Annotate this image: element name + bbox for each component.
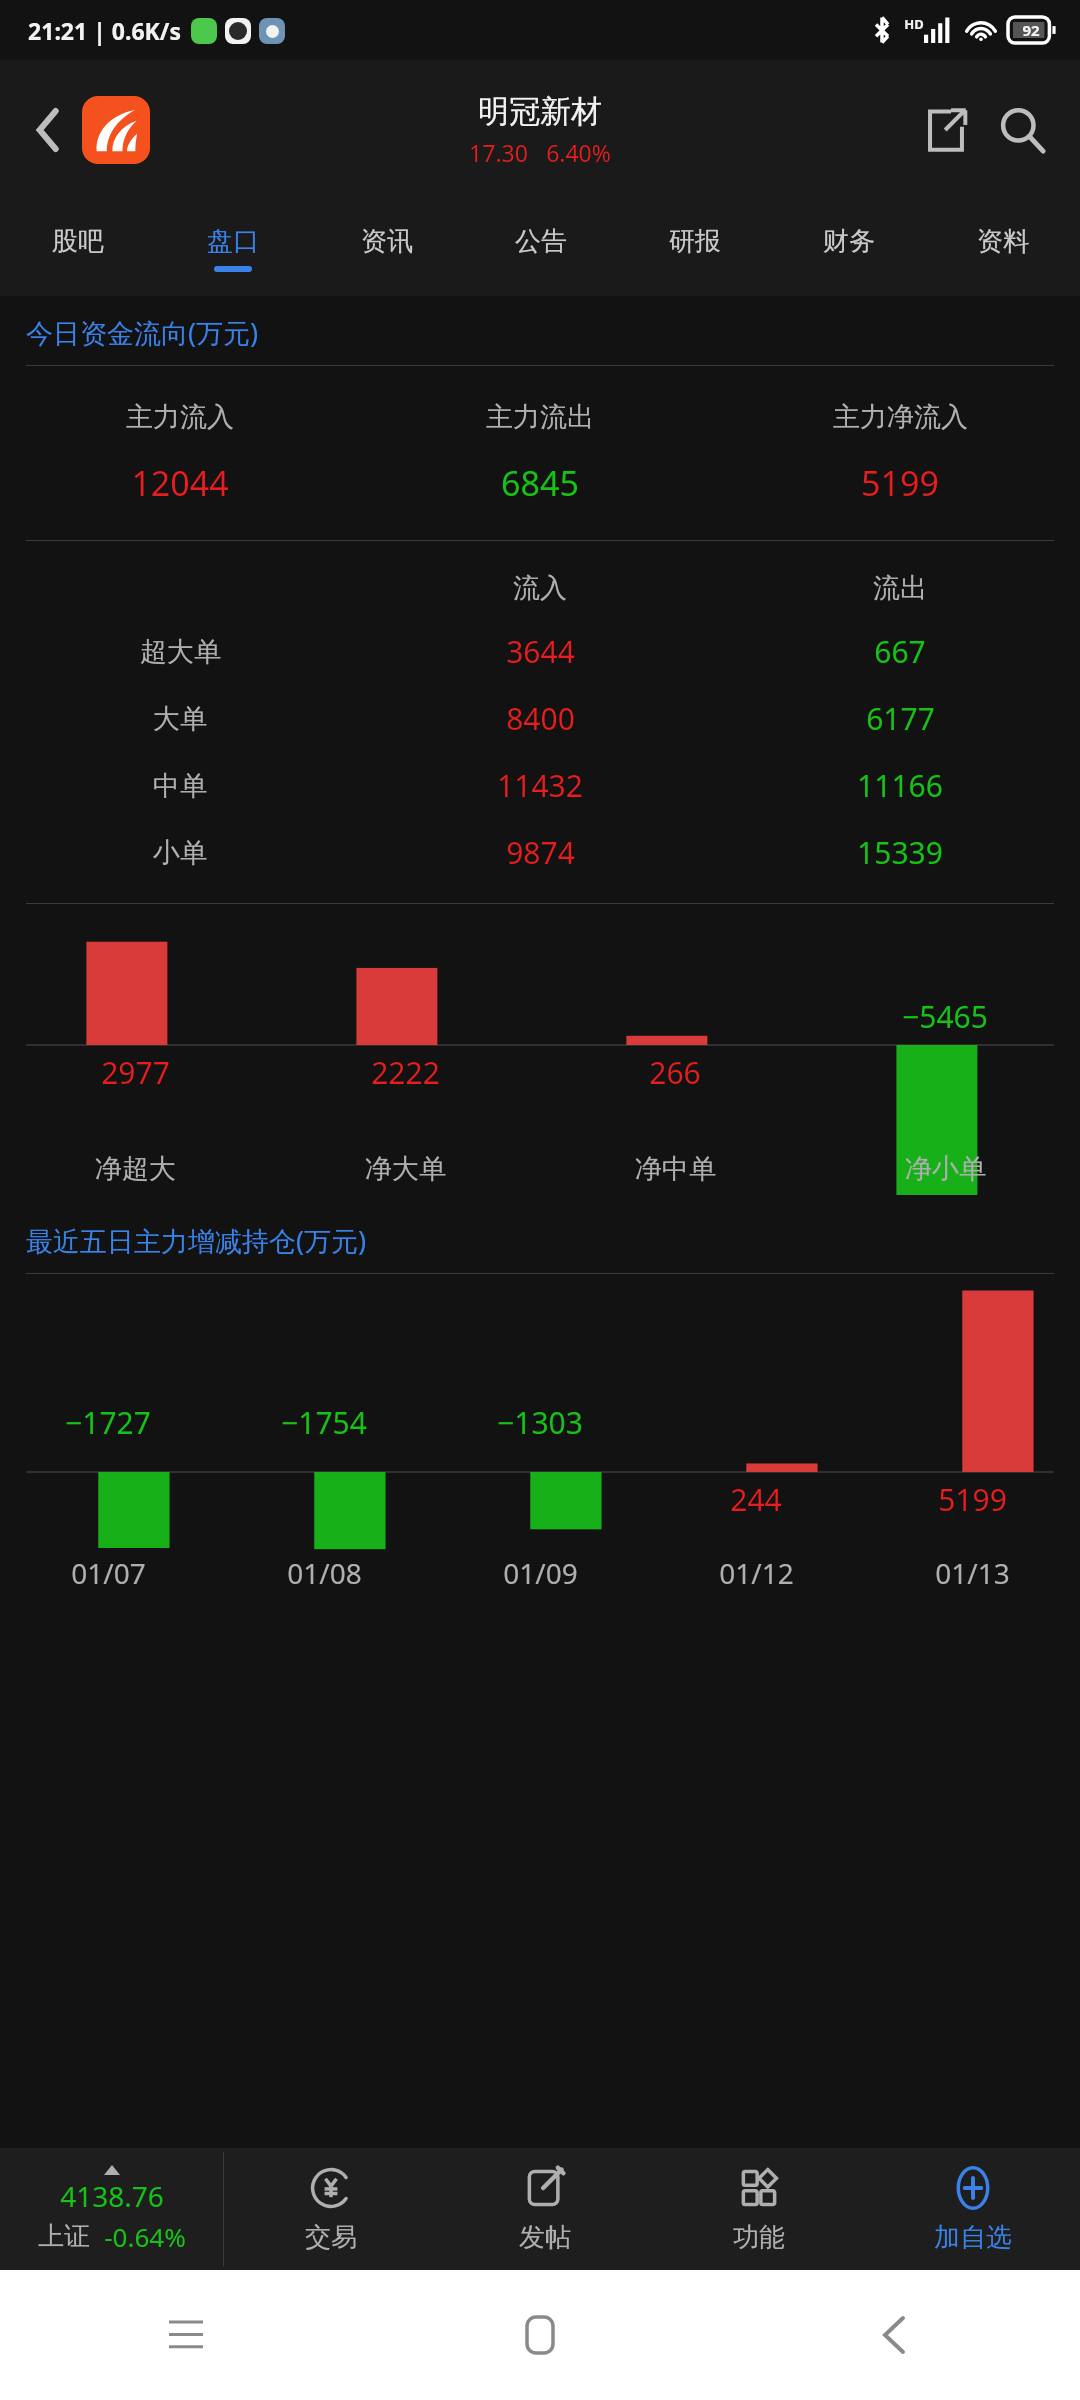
staticText: 11432 [497,765,583,806]
staticText: 5199 [861,460,939,506]
staticText: 5199 [938,1479,1007,1520]
button[interactable]: Recent apps [151,2300,221,2370]
staticText: 21:21 | 0.6K/s [28,15,181,46]
button[interactable]: 公告 [464,200,618,296]
staticText: 中单 [153,769,207,803]
staticText: 今日资金流向(万元) [26,314,259,351]
staticText: 加自选 [934,2221,1012,2254]
staticText: 01/13 [935,1554,1010,1592]
staticText: −1727 [65,1402,151,1443]
button[interactable]: Back [859,2300,929,2370]
staticText: 8400 [506,698,575,739]
button[interactable]: 盘口 [155,200,310,296]
staticText: 4138.76 [60,2177,164,2215]
staticText: 266 [649,1052,701,1093]
staticText: 上证 [38,2220,90,2253]
staticText: 667 [874,631,926,672]
staticText: 财务 [823,225,875,258]
staticText: 公告 [515,225,567,258]
button[interactable]: 资讯 [310,200,464,296]
staticText: 11166 [857,765,943,806]
staticText: 流入 [513,571,567,605]
button[interactable]: 财务 [772,200,926,296]
staticText: 大单 [153,702,207,736]
staticText: 244 [730,1479,782,1520]
staticText: 01/07 [71,1554,146,1592]
staticText: 资料 [977,225,1029,258]
staticText: 净小单 [905,1152,986,1186]
button[interactable]: 研报 [618,200,772,296]
staticText: 股吧 [52,225,104,258]
staticText: 盘口 [207,225,259,258]
staticText: −1754 [281,1402,367,1443]
staticText: 6177 [866,698,935,739]
staticText: 净超大 [95,1152,176,1186]
staticText: 主力流入 [126,400,234,434]
staticText: 01/12 [719,1554,794,1592]
staticText: −1303 [497,1402,583,1443]
staticText: 6.40% [546,137,611,168]
button[interactable]: App logo [82,96,150,164]
staticText: 9874 [506,832,575,873]
button[interactable]: Back [22,104,74,156]
staticText: 17.30 [469,137,528,168]
button[interactable]: Share [914,98,978,162]
staticText: 92 [1022,20,1040,40]
button[interactable]: 交易 [224,2148,438,2270]
staticText: 6845 [501,460,579,506]
staticText: 主力流出 [486,400,594,434]
button[interactable]: 股吧 [0,200,155,296]
staticText: 资讯 [361,225,413,258]
staticText: -0.64% [104,2219,186,2254]
staticText: 明冠新材 [478,92,602,131]
staticText: −5465 [902,996,988,1037]
staticText: 3644 [506,631,575,672]
button[interactable]: 发帖 [438,2148,652,2270]
button[interactable]: 功能 [652,2148,866,2270]
staticText: 研报 [669,225,721,258]
staticText: 流出 [873,571,927,605]
staticText: 2222 [371,1052,440,1093]
button[interactable]: 4138.76 [0,2148,223,2270]
staticText: 12044 [131,460,229,506]
button[interactable]: Home [505,2300,575,2370]
staticText: 小单 [153,836,207,870]
staticText: 功能 [733,2221,785,2254]
staticText: 超大单 [140,635,221,669]
button[interactable]: 加自选 [866,2148,1080,2270]
staticText: 2977 [101,1052,170,1093]
button[interactable]: 资料 [926,200,1080,296]
staticText: HD [904,15,924,33]
staticText: 净大单 [365,1152,446,1186]
staticText: 交易 [305,2221,357,2254]
staticText: 发帖 [519,2221,571,2254]
staticText: 01/08 [287,1554,362,1592]
staticText: 最近五日主力增减持仓(万元) [26,1222,367,1259]
staticText: 01/09 [503,1554,578,1592]
staticText: 主力净流入 [833,400,968,434]
button[interactable]: Search [990,98,1054,162]
staticText: 15339 [857,832,943,873]
staticText: 净中单 [635,1152,716,1186]
